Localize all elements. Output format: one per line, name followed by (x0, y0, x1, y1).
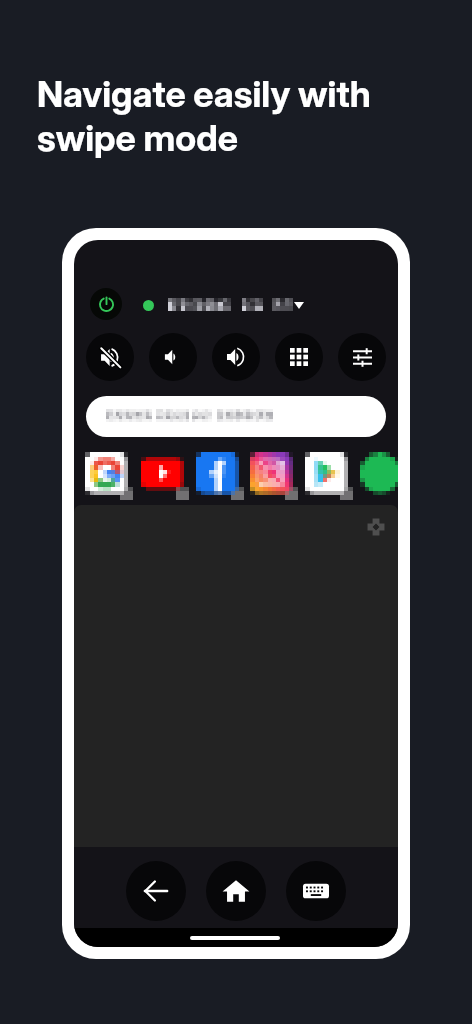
button[interactable]: Settings (338, 333, 386, 381)
button[interactable]: App 1 (81, 448, 131, 498)
button[interactable]: Suchen oder URL eingeben (86, 396, 386, 437)
button[interactable]: Back (126, 861, 186, 921)
button[interactable]: App 5 (301, 448, 351, 498)
button[interactable]: Mute (86, 333, 134, 381)
button[interactable]: Volume down (149, 333, 197, 381)
button[interactable]: App 2 (137, 448, 187, 498)
button[interactable]: App 6 (356, 448, 398, 498)
button[interactable]: App 3 (192, 448, 242, 498)
button[interactable]: Google TV TCL device selector (143, 294, 304, 316)
button[interactable]: App 4 (246, 448, 296, 498)
button[interactable]: Apps (275, 333, 323, 381)
button[interactable]: Keyboard (286, 861, 346, 921)
button[interactable]: Volume up (212, 333, 260, 381)
button[interactable]: Home (206, 861, 266, 921)
button[interactable]: Power (90, 288, 122, 320)
staticText: Navigate easily with swipe mode (37, 72, 371, 160)
